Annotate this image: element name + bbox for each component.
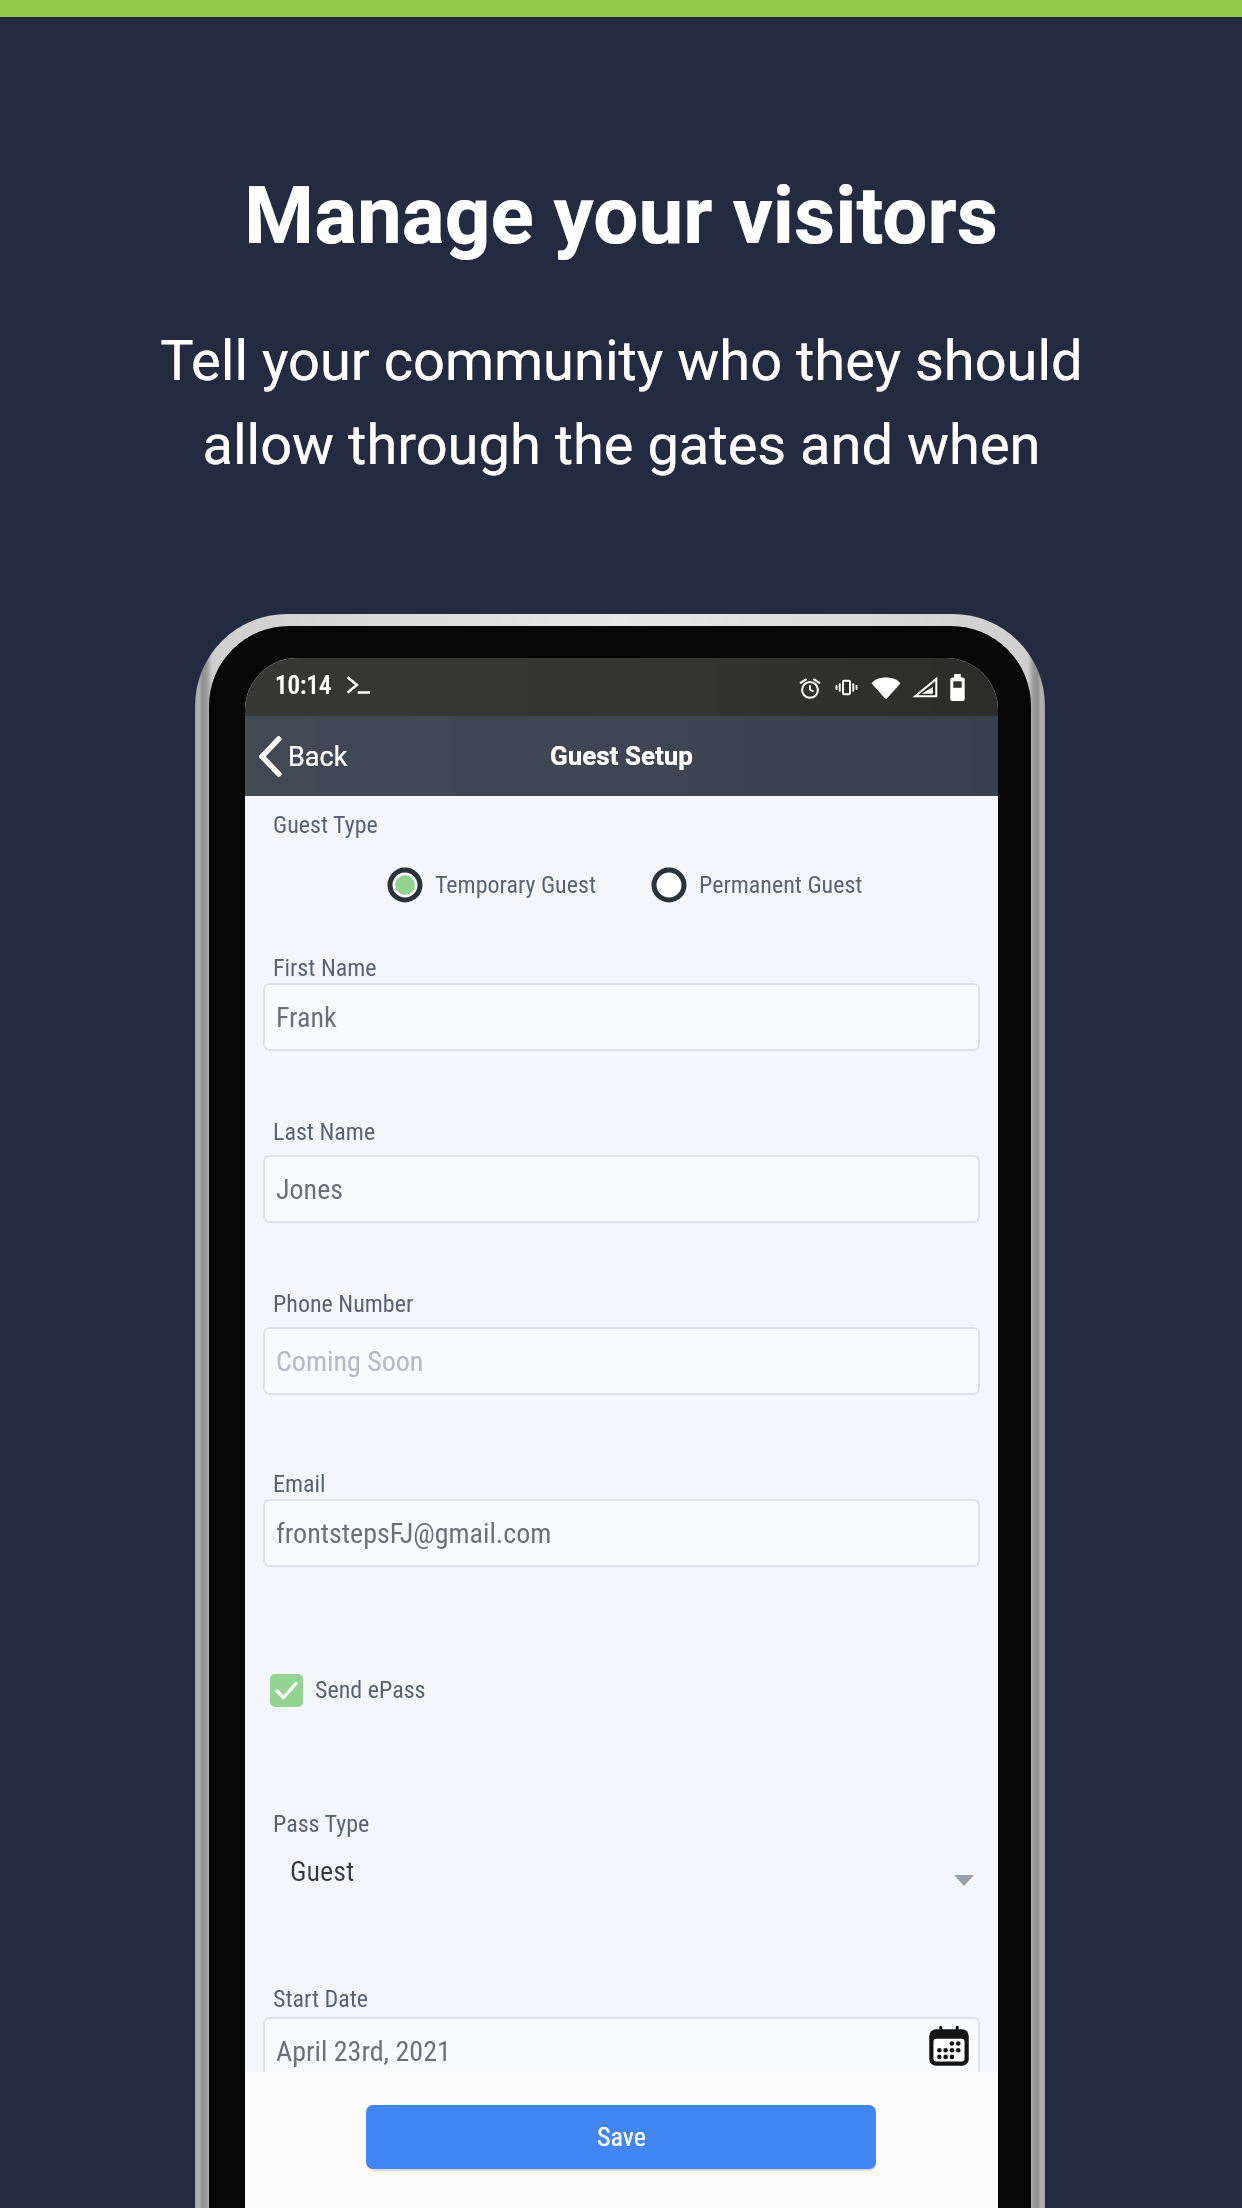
staticText: Save (597, 2122, 646, 2152)
other: Wi-Fi (871, 675, 901, 700)
staticText: Send ePass (315, 1676, 426, 1704)
button[interactable]: Back (254, 734, 348, 779)
other: Pick start date (928, 2025, 970, 2067)
staticText: Start Date (273, 1985, 369, 2013)
button[interactable]: Coming Soon (263, 1327, 980, 1395)
button[interactable]: Frank (263, 983, 980, 1051)
staticText: frontstepsFJ@gmail.com (276, 1517, 552, 1550)
staticText: Permanent Guest (699, 871, 863, 899)
other: Send ePass checkbox (270, 1674, 303, 1707)
button[interactable]: Permanent Guest (651, 866, 863, 904)
other: Mobile signal (912, 674, 939, 701)
staticText: First Name (273, 954, 377, 982)
staticText: Tell your community who they should allo… (160, 328, 1083, 477)
staticText: Last Name (273, 1118, 376, 1146)
staticText: Guest Type (273, 811, 378, 839)
staticText: Guest (290, 1855, 355, 1888)
staticText: 10:14 (275, 671, 332, 700)
staticText: Guest Setup (550, 741, 693, 771)
staticText: Pass Type (273, 1810, 370, 1838)
button[interactable]: Temporary Guest (387, 866, 596, 904)
staticText: Temporary Guest (435, 871, 596, 899)
other: Temporary Guest (387, 867, 423, 903)
button[interactable]: Jones (263, 1155, 980, 1223)
staticText: Coming Soon (276, 1345, 424, 1378)
other: Permanent Guest (651, 867, 687, 903)
staticText: Phone Number (273, 1290, 414, 1318)
other: Alarm set (798, 676, 822, 700)
other: Battery (950, 674, 965, 701)
staticText: Email (273, 1470, 326, 1498)
staticText: Jones (276, 1173, 344, 1206)
staticText: Frank (276, 1001, 337, 1034)
button[interactable]: Guest (263, 1849, 980, 1893)
staticText: Back (288, 741, 348, 773)
button[interactable]: Send ePass checkbox (270, 1670, 426, 1710)
button[interactable]: frontstepsFJ@gmail.com (263, 1499, 980, 1567)
other: Vibrate mode (833, 674, 860, 701)
button[interactable]: April 23rd, 2021 (263, 2017, 980, 2085)
staticText: Manage your visitors (244, 169, 998, 263)
button[interactable]: Save (366, 2105, 876, 2169)
staticText: April 23rd, 2021 (276, 2035, 451, 2068)
